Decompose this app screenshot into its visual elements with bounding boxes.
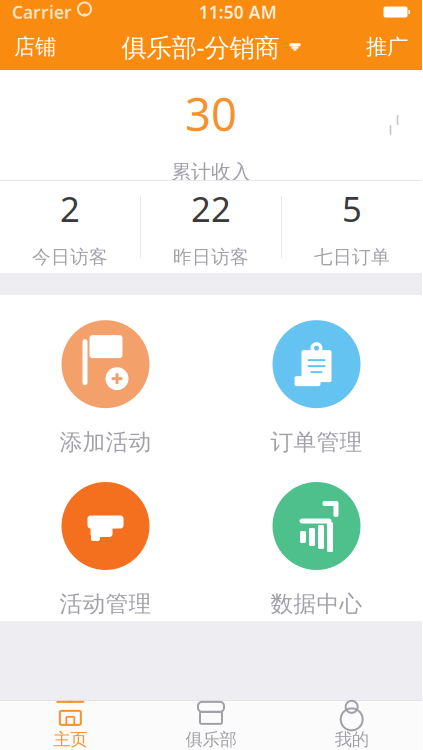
button[interactable]: 30: [0, 70, 422, 180]
staticText: 店铺: [14, 34, 56, 60]
staticText: 5: [342, 185, 362, 231]
button[interactable]: 订单管理: [211, 320, 422, 456]
button[interactable]: 添加活动: [0, 320, 211, 456]
staticText: 11:50 AM: [199, 0, 277, 23]
staticText: 俱乐部: [185, 729, 236, 750]
staticText: 主页: [53, 729, 87, 750]
staticText: 添加活动: [59, 428, 151, 456]
staticText: 今日访客: [32, 246, 108, 268]
staticText: 我的: [335, 729, 369, 750]
staticText: 活动管理: [59, 590, 151, 618]
staticText: 昨日访客: [173, 246, 249, 268]
staticText: 七日订单: [314, 246, 390, 268]
button[interactable]: 店铺: [0, 24, 70, 70]
button[interactable]: 俱乐部-分销商: [121, 24, 300, 70]
staticText: 俱乐部-分销商: [121, 30, 279, 64]
button[interactable]: 我的: [281, 701, 422, 750]
button[interactable]: 22: [141, 181, 281, 273]
button[interactable]: 5: [282, 181, 422, 273]
staticText: Carrier: [12, 0, 72, 23]
button[interactable]: 活动管理: [0, 482, 211, 618]
staticText: 数据中心: [270, 590, 362, 618]
staticText: 2: [60, 185, 80, 231]
staticText: 推广: [366, 34, 408, 60]
staticText: 30: [185, 84, 237, 144]
button[interactable]: 推广: [352, 24, 422, 70]
button[interactable]: 俱乐部: [141, 701, 281, 750]
button[interactable]: 主页: [0, 701, 141, 750]
button[interactable]: 2: [0, 181, 140, 273]
button[interactable]: 数据中心: [211, 482, 422, 618]
staticText: 累计收入: [171, 160, 251, 184]
staticText: 22: [191, 185, 231, 231]
staticText: 订单管理: [270, 428, 362, 456]
